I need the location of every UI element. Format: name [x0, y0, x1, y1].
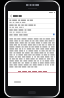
other: Back — [9, 14, 12, 17]
button[interactable]: Back — [8, 13, 56, 18]
button[interactable] — [18, 71, 47, 72]
